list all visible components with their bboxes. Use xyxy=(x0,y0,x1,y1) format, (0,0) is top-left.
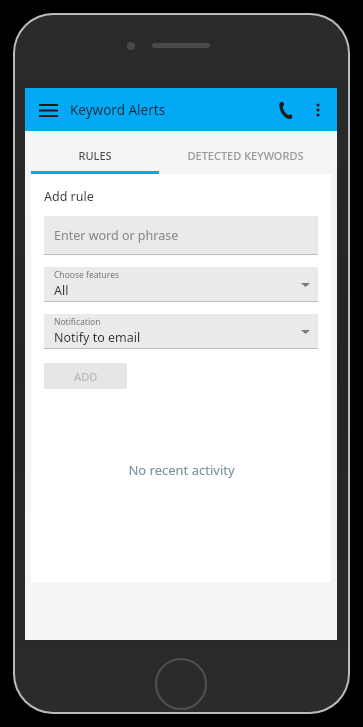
button[interactable]: Open navigation menu xyxy=(33,95,63,125)
staticText: Keyword Alerts xyxy=(70,101,166,119)
button[interactable]: DETECTED KEYWORDS xyxy=(159,137,331,174)
staticText: Choose features xyxy=(54,269,120,281)
staticText: No recent activity xyxy=(128,461,235,479)
button[interactable]: More options xyxy=(303,95,333,125)
staticText: Notification xyxy=(54,316,101,328)
button[interactable]: Call xyxy=(269,93,303,127)
staticText: Add rule xyxy=(44,188,94,205)
staticText: Enter word or phrase xyxy=(54,227,179,244)
staticText: All xyxy=(54,282,69,299)
button[interactable]: ADD xyxy=(44,363,127,389)
button[interactable]: Enter word or phrase xyxy=(44,216,318,254)
staticText: RULES xyxy=(78,148,112,163)
staticText: Notify to email xyxy=(54,329,141,346)
button[interactable]: Choose features xyxy=(44,267,318,301)
button[interactable]: RULES xyxy=(31,137,159,174)
staticText: ADD xyxy=(74,369,98,384)
button[interactable]: Notification xyxy=(44,314,318,348)
staticText: DETECTED KEYWORDS xyxy=(187,148,304,163)
